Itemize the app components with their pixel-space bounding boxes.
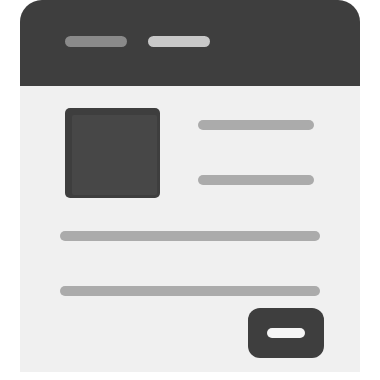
button[interactable]: Image (20, 0, 360, 372)
button[interactable]: Image (65, 108, 160, 198)
button[interactable]: Action (248, 308, 324, 358)
